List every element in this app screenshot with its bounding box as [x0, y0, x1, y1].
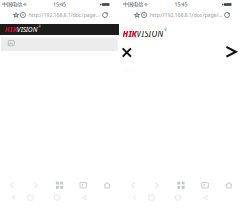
button[interactable]: Reload [222, 9, 231, 20]
button[interactable]: Home [217, 178, 241, 193]
staticText: 中国电信 [123, 1, 143, 8]
button[interactable]: Back [8, 192, 18, 202]
button[interactable]: Menu [79, 192, 89, 202]
staticText: HIK [122, 28, 136, 39]
staticText: ® [39, 25, 41, 29]
staticText: 15:45 [174, 1, 187, 8]
button[interactable]: http://192.168.8.1/doc/page/en... [149, 9, 222, 20]
staticText: 令 [144, 2, 148, 7]
staticText: http://192.168.8.1/doc/page/en... [149, 11, 222, 19]
button[interactable]: Bookmark [133, 9, 141, 20]
button[interactable]: Page info [140, 9, 148, 20]
staticText: ® [164, 28, 166, 32]
button[interactable]: http://192.168.8.1/doc/page/en... [28, 9, 100, 20]
staticText: 15:45 [53, 1, 66, 8]
button[interactable]: Windows [71, 178, 95, 193]
button[interactable]: Page info [19, 9, 27, 20]
button[interactable]: Home [173, 192, 183, 202]
button[interactable]: Recents [25, 192, 35, 202]
button[interactable]: Windows [193, 178, 217, 193]
button[interactable]: Forward [24, 178, 48, 193]
button[interactable]: Next [224, 45, 237, 58]
staticText: VISION [17, 25, 38, 34]
staticText: http://192.168.8.1/doc/page/en... [28, 11, 100, 19]
button[interactable]: Menu [200, 192, 210, 202]
button[interactable]: Tabs [48, 178, 71, 193]
button[interactable]: Back [121, 178, 145, 193]
button[interactable]: Reload [100, 9, 109, 20]
button[interactable]: Recents [146, 192, 156, 202]
staticText: VISION [136, 28, 163, 39]
button[interactable]: Tabs [169, 178, 193, 193]
button[interactable]: Home [95, 178, 119, 193]
staticText: 令 [23, 2, 27, 7]
button[interactable]: Bookmark [12, 9, 20, 20]
button[interactable]: Home [52, 192, 62, 202]
staticText: 中国电信 [2, 1, 22, 8]
staticText: HIK [5, 25, 17, 34]
button[interactable]: Back [129, 192, 139, 202]
button[interactable]: Forward [145, 178, 169, 193]
button[interactable]: Close [120, 46, 133, 59]
button[interactable]: Back [0, 178, 24, 193]
